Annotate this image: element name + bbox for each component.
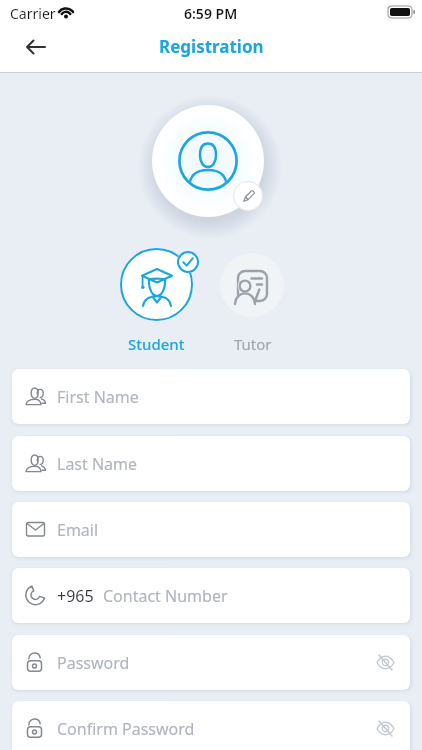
button[interactable] [220,253,284,317]
button[interactable]: +965 [12,568,410,623]
button[interactable]: Password [12,635,410,690]
button[interactable] [120,248,193,321]
staticText: Contact Number [103,585,228,607]
button[interactable]: Confirm Password [12,701,410,750]
staticText: Confirm Password [57,718,195,740]
button[interactable] [152,105,264,217]
button[interactable]: Last Name [12,436,410,491]
staticText: Password [57,652,130,674]
staticText: 6:59 PM [184,4,238,23]
staticText: Last Name [57,453,138,475]
staticText: +965 [57,585,94,607]
button[interactable] [233,181,263,211]
button[interactable] [26,39,46,55]
staticText: Student [128,334,185,354]
button[interactable]: Email [12,502,410,557]
staticText: Email [57,519,99,541]
staticText: First Name [57,386,139,408]
staticText: Registration [159,35,264,58]
staticText: Carrier [10,4,56,23]
button[interactable]: First Name [12,369,410,424]
staticText: Tutor [234,334,272,354]
